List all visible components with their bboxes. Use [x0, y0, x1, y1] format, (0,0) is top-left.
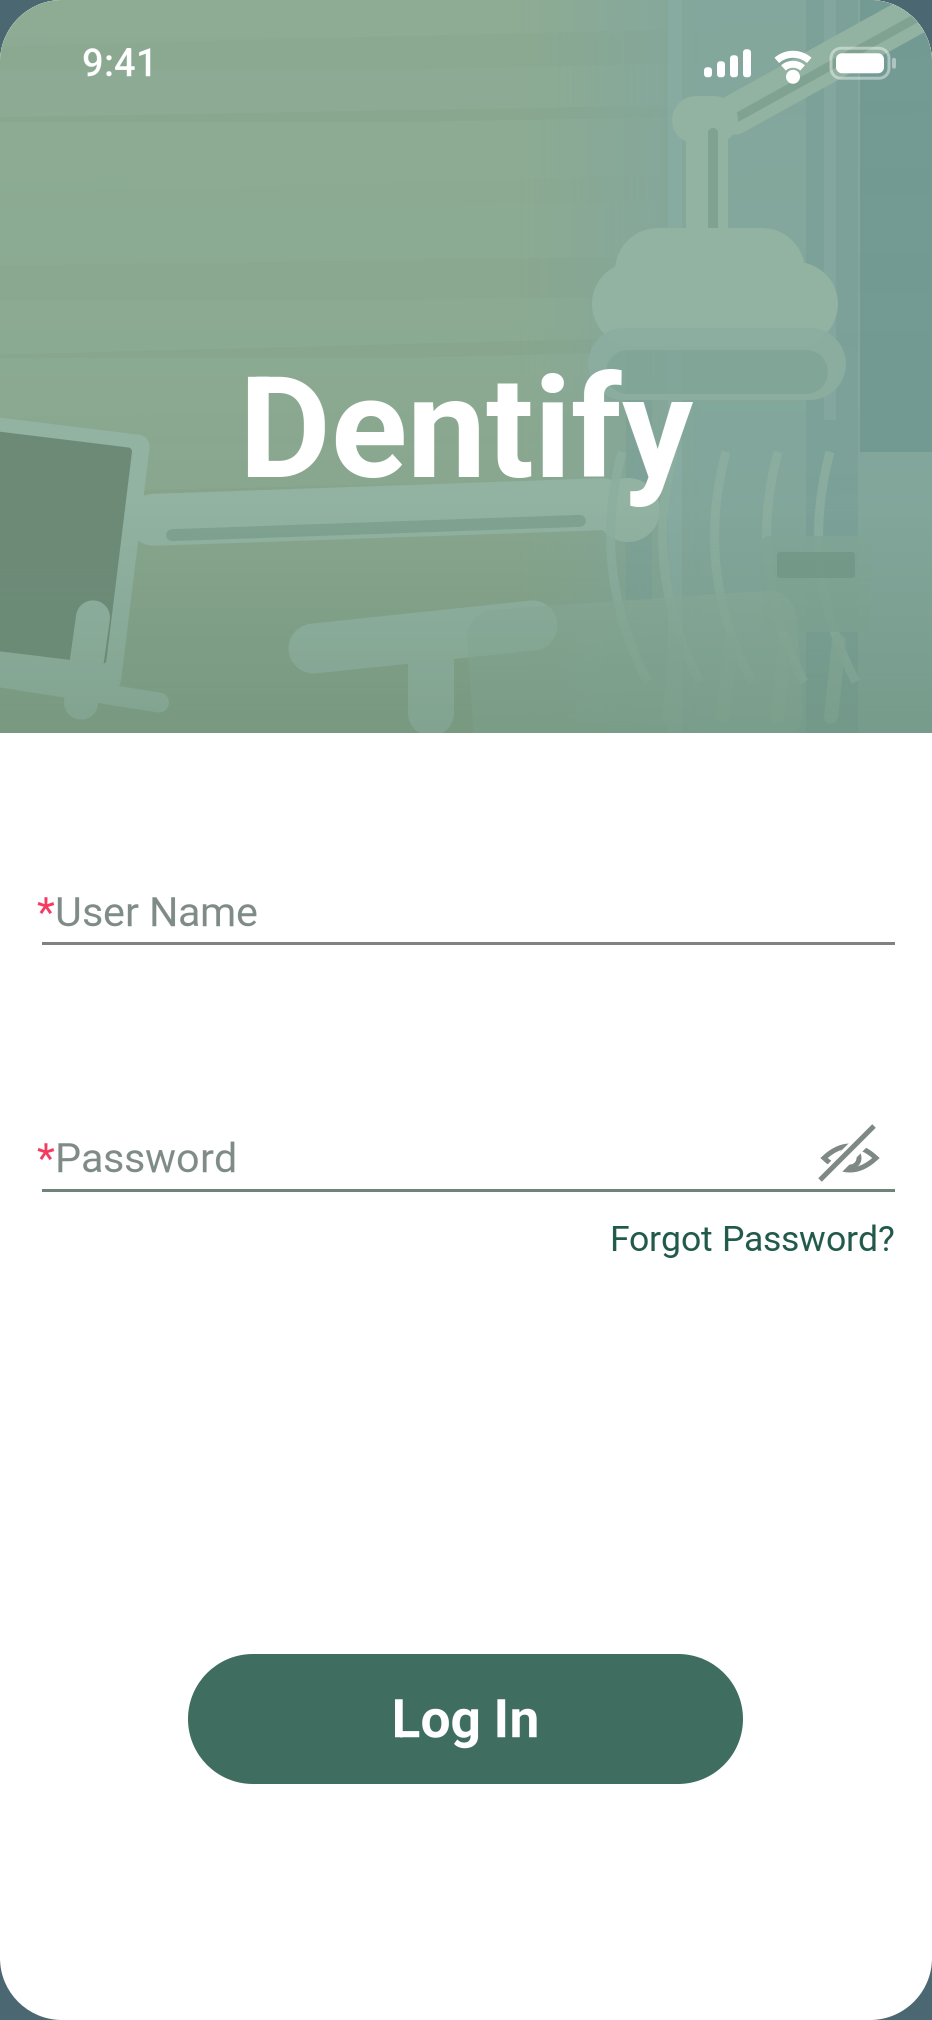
staticText: Forgot Password?	[610, 1218, 895, 1260]
staticText: 9:41	[82, 41, 158, 85]
staticText: User Name	[55, 888, 258, 936]
staticText: Log In	[391, 1688, 539, 1750]
staticText: Dentify	[239, 346, 693, 512]
staticText: *	[37, 1134, 55, 1182]
staticText: *	[37, 888, 55, 936]
button[interactable]: Show password	[822, 1134, 880, 1184]
button[interactable]: Forgot Password?	[610, 1218, 895, 1260]
button[interactable]: Log In	[188, 1654, 743, 1784]
staticText: Password	[55, 1134, 237, 1182]
